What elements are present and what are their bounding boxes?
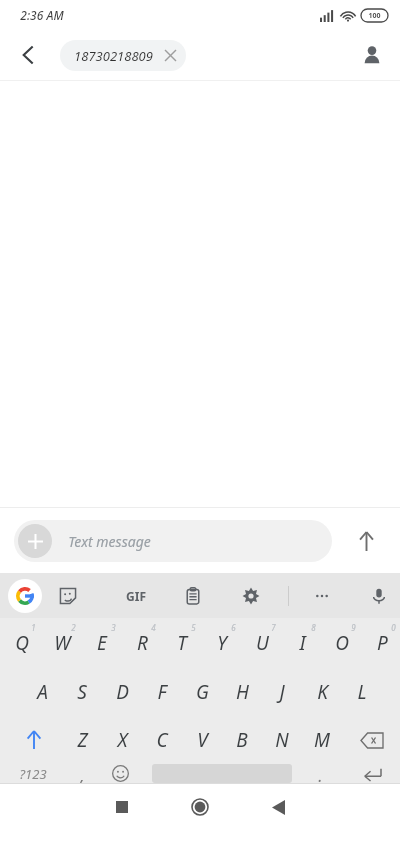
button[interactable]: C xyxy=(142,716,182,764)
staticText: 9 xyxy=(351,622,356,633)
staticText: 2 xyxy=(71,622,76,633)
staticText: 6 xyxy=(231,622,236,633)
button[interactable]: Emoji xyxy=(100,764,140,783)
staticText: N xyxy=(275,727,289,753)
button[interactable]: ?123 xyxy=(8,764,58,783)
button[interactable]: Shift xyxy=(12,716,56,764)
button[interactable]: Add attachment xyxy=(14,520,332,562)
button[interactable]: E xyxy=(82,618,122,668)
staticText: P xyxy=(377,630,388,656)
staticText: M xyxy=(314,727,330,753)
button[interactable]: U xyxy=(242,618,282,668)
staticText: Q xyxy=(15,630,29,656)
staticText: F xyxy=(157,679,167,705)
button[interactable]: F xyxy=(142,668,182,716)
staticText: K xyxy=(317,679,328,705)
staticText: X xyxy=(117,727,128,753)
staticText: U xyxy=(256,630,269,656)
staticText: L xyxy=(357,679,367,705)
staticText: 18730218809 xyxy=(74,47,153,65)
button[interactable]: N xyxy=(262,716,302,764)
button[interactable]: B xyxy=(222,716,262,764)
button[interactable]: Backspace xyxy=(352,716,392,764)
staticText: J xyxy=(279,679,285,705)
button[interactable]: Google xyxy=(8,579,42,613)
staticText: Z xyxy=(77,727,88,753)
button[interactable]: Voice input xyxy=(362,579,396,613)
button[interactable]: O xyxy=(322,618,362,668)
button[interactable]: Period xyxy=(300,764,340,783)
staticText: D xyxy=(116,679,129,705)
button[interactable]: More options xyxy=(305,579,339,613)
button[interactable]: M xyxy=(302,716,342,764)
button[interactable]: Y xyxy=(202,618,242,668)
staticText: G xyxy=(196,679,209,705)
staticText: I xyxy=(299,630,306,656)
staticText: 8 xyxy=(311,622,316,633)
staticText: H xyxy=(236,679,249,705)
button[interactable]: Clipboard xyxy=(176,579,210,613)
staticText: W xyxy=(54,630,71,656)
staticText: V xyxy=(197,727,208,753)
staticText: Text message xyxy=(68,532,151,551)
button[interactable]: Send xyxy=(346,521,386,561)
button[interactable]: Home xyxy=(176,784,224,830)
button[interactable]: GIF xyxy=(119,579,153,613)
button[interactable]: L xyxy=(342,668,382,716)
button[interactable]: K xyxy=(302,668,342,716)
staticText: GIF xyxy=(126,588,146,604)
button[interactable]: GIF xyxy=(119,588,153,604)
button[interactable]: A xyxy=(22,668,62,716)
staticText: 2:36 AM xyxy=(20,7,64,23)
staticText: 5 xyxy=(191,622,196,633)
button[interactable]: S xyxy=(62,668,102,716)
button[interactable]: V xyxy=(182,716,222,764)
button[interactable]: W xyxy=(42,618,82,668)
button[interactable]: Stickers xyxy=(51,579,85,613)
staticText: 1 xyxy=(31,622,36,633)
button[interactable]: G xyxy=(182,668,222,716)
button[interactable]: D xyxy=(102,668,142,716)
button[interactable]: Back xyxy=(8,35,48,75)
staticText: O xyxy=(335,630,349,656)
button[interactable]: T xyxy=(162,618,202,668)
button[interactable]: Back xyxy=(254,784,302,830)
button[interactable]: P xyxy=(362,618,400,668)
button[interactable]: Z xyxy=(62,716,102,764)
button[interactable]: R xyxy=(122,618,162,668)
button[interactable]: X xyxy=(102,716,142,764)
staticText: , xyxy=(80,764,85,783)
staticText: 100 xyxy=(368,11,381,21)
staticText: 4 xyxy=(151,622,156,633)
button[interactable]: Add attachment xyxy=(18,524,52,558)
staticText: 7 xyxy=(271,622,276,633)
staticText: R xyxy=(137,630,148,656)
staticText: 0 xyxy=(391,622,396,633)
staticText: B xyxy=(236,727,248,753)
staticText: A xyxy=(37,679,48,705)
button[interactable]: 18730218809 xyxy=(60,40,186,71)
staticText: ?123 xyxy=(19,765,47,783)
staticText: S xyxy=(77,679,87,705)
staticText: T xyxy=(177,630,187,656)
staticText: Y xyxy=(217,630,227,656)
staticText: . xyxy=(318,764,323,783)
button[interactable]: J xyxy=(262,668,302,716)
button[interactable]: I xyxy=(282,618,322,668)
staticText: E xyxy=(97,630,107,656)
staticText: C xyxy=(156,727,168,753)
button[interactable]: Settings xyxy=(234,579,268,613)
button[interactable]: Contact details xyxy=(352,35,392,75)
staticText: 3 xyxy=(111,622,116,633)
button[interactable]: H xyxy=(222,668,262,716)
button[interactable]: Q xyxy=(2,618,42,668)
button[interactable]: Enter xyxy=(350,764,394,783)
button[interactable]: Recents xyxy=(98,784,146,830)
button[interactable]: Comma xyxy=(62,764,102,783)
